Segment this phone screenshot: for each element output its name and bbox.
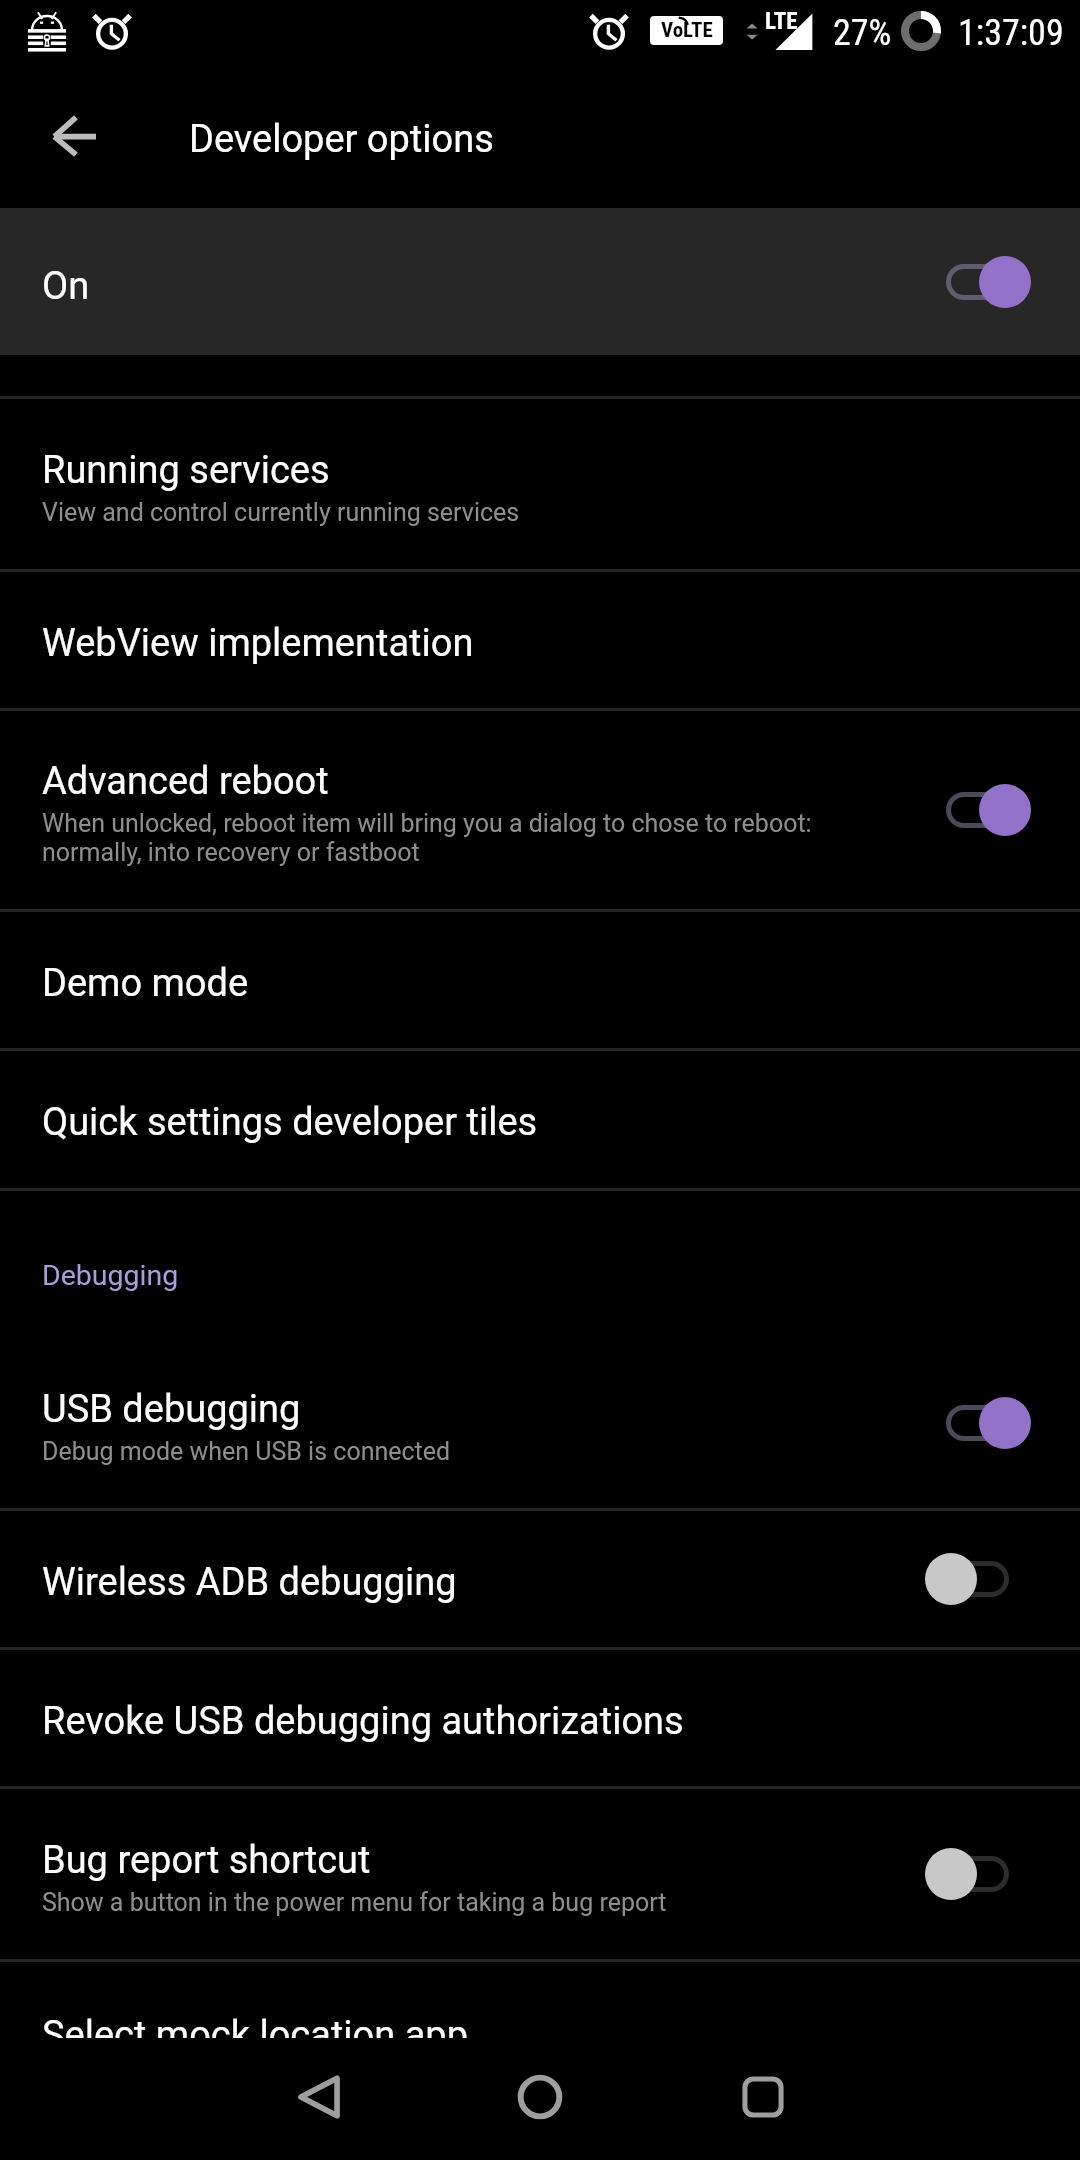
staticText: Revoke USB debugging authorizations (42, 1699, 684, 1744)
button[interactable]: On (0, 208, 1080, 355)
staticText: Running services (42, 448, 330, 493)
staticText: 1:37:09 (958, 12, 1064, 54)
staticText: Demo mode (42, 961, 249, 1006)
button[interactable]: Home (480, 2037, 600, 2157)
button[interactable]: Enabled (925, 782, 1031, 838)
button[interactable]: Select mock location app (0, 1962, 1080, 2102)
button[interactable]: Disabled (925, 1846, 1031, 1902)
button[interactable]: Recent apps (703, 2037, 823, 2157)
staticText: Debugging (42, 1259, 179, 1292)
button[interactable]: Advanced reboot (0, 711, 1080, 909)
button[interactable]: Enabled (925, 254, 1031, 310)
staticText: Debug mode when USB is connected (42, 1437, 451, 1466)
button[interactable]: Bug report shortcut (0, 1789, 1080, 1959)
button[interactable]: USB debugging (0, 1338, 1080, 1508)
button[interactable]: Quick settings developer tiles (0, 1051, 1080, 1188)
staticText: USB debugging (42, 1387, 301, 1432)
staticText: VoLTE (661, 18, 713, 43)
staticText: Developer options (189, 117, 494, 162)
button[interactable]: Disabled (925, 1551, 1031, 1607)
staticText: View and control currently running servi… (42, 498, 520, 527)
staticText: Advanced reboot (42, 759, 329, 804)
button[interactable]: WebView implementation (0, 572, 1080, 708)
staticText: WebView implementation (42, 621, 474, 666)
button[interactable]: Revoke USB debugging authorizations (0, 1650, 1080, 1786)
staticText: Wireless ADB debugging (42, 1560, 457, 1605)
button[interactable]: Back (259, 2037, 379, 2157)
staticText: Select mock location app (42, 2013, 468, 2058)
staticText: 27% (833, 12, 892, 54)
staticText: When unlocked, reboot item will bring yo… (42, 809, 812, 867)
button[interactable]: Navigate up (8, 70, 140, 202)
staticText: Bug report shortcut (42, 1838, 371, 1883)
button[interactable]: Demo mode (0, 912, 1080, 1048)
button[interactable]: Enabled (925, 1395, 1031, 1451)
staticText: On (42, 264, 90, 309)
button[interactable]: Wireless ADB debugging (0, 1511, 1080, 1647)
button[interactable]: Running services (0, 399, 1080, 569)
staticText: Quick settings developer tiles (42, 1100, 538, 1145)
staticText: Show a button in the power menu for taki… (42, 1888, 667, 1917)
staticText: LTE (765, 8, 798, 35)
